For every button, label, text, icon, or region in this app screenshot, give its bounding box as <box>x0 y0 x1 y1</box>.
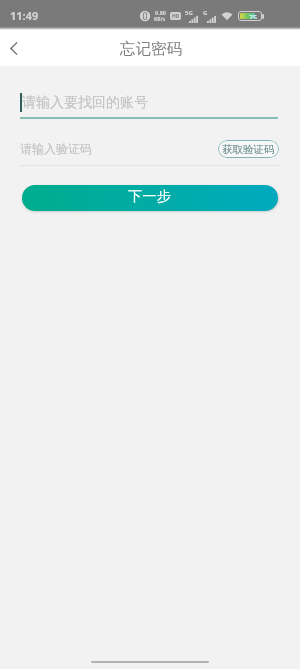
staticText: 5G <box>185 9 193 17</box>
staticText: HD <box>172 13 180 20</box>
button[interactable]: 获取验证码 <box>218 140 279 158</box>
staticText: KB/s <box>154 16 166 23</box>
staticText: 忘记密码 <box>120 39 182 59</box>
staticText: 9.80 <box>155 9 166 16</box>
staticText: 获取验证码 <box>222 143 275 156</box>
staticText: 下一步 <box>128 188 172 206</box>
staticText: 请输入验证码 <box>20 141 92 156</box>
staticText: G <box>203 9 208 17</box>
button[interactable] <box>0 30 36 66</box>
button[interactable]: 下一步 <box>22 185 278 211</box>
staticText: 75 <box>249 13 258 19</box>
staticText: 请输入要找回的账号 <box>22 94 148 112</box>
staticText: 11:49 <box>10 8 39 23</box>
